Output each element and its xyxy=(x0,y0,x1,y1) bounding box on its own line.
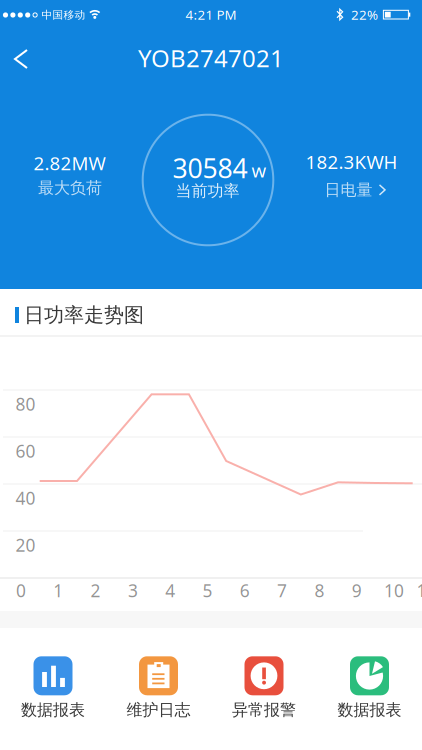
button[interactable]: Back xyxy=(2,39,42,79)
staticText: YOB2747021 xyxy=(138,42,284,74)
staticText: 4:21 PM xyxy=(185,6,236,23)
staticText: 22% xyxy=(351,6,378,23)
staticText: 数据报表 xyxy=(21,700,85,720)
staticText: 30584 xyxy=(172,150,247,186)
staticText: 维护日志 xyxy=(126,700,190,720)
staticText: 3 xyxy=(128,579,138,602)
staticText: 60 xyxy=(15,439,35,462)
staticText: 40 xyxy=(15,486,35,509)
staticText: 0 xyxy=(16,579,26,602)
button[interactable]: 182.3KWH xyxy=(286,147,416,201)
staticText: 20 xyxy=(15,533,35,556)
button[interactable]: 数据报表 xyxy=(319,644,419,736)
staticText: 日电量 xyxy=(324,180,372,200)
staticText: 数据报表 xyxy=(337,700,401,720)
staticText: 182.3KWH xyxy=(305,149,397,174)
staticText: 最大负荷 xyxy=(38,178,102,198)
staticText: 当前功率 xyxy=(175,181,239,201)
staticText: 2 xyxy=(91,579,101,602)
button[interactable]: 维护日志 xyxy=(108,644,208,736)
button[interactable]: 数据报表 xyxy=(3,644,103,736)
staticText: 5 xyxy=(202,579,212,602)
staticText: 80 xyxy=(15,392,35,415)
button[interactable]: 异常报警 xyxy=(214,644,314,736)
staticText: w xyxy=(251,158,266,183)
staticText: 异常报警 xyxy=(232,700,296,720)
staticText: 中国移动 xyxy=(41,8,85,21)
staticText: 11 xyxy=(416,579,422,602)
staticText: 1 xyxy=(53,579,63,602)
staticText: 8 xyxy=(314,579,324,602)
staticText: 日功率走势图 xyxy=(24,303,144,327)
staticText: 7 xyxy=(277,579,287,602)
staticText: 6 xyxy=(240,579,250,602)
staticText: 4 xyxy=(165,579,175,602)
staticText: 2.82MW xyxy=(33,151,105,175)
staticText: 9 xyxy=(352,579,362,602)
staticText: 10 xyxy=(384,579,404,602)
